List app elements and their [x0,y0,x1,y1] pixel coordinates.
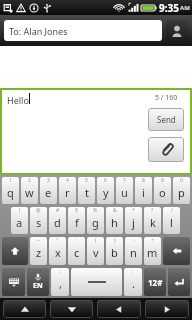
staticText: c [74,245,80,260]
staticText: 9 [161,177,164,184]
button[interactable]: 7 [116,177,133,204]
button[interactable]: Attach [148,137,184,162]
staticText: k [150,215,156,230]
button[interactable]: @ [30,207,47,234]
button[interactable]: 4 [59,177,76,204]
staticText: Hello [7,94,29,106]
staticText: 5 [85,177,88,184]
staticText: EN [33,281,43,291]
button[interactable]: 6 [97,177,114,204]
button[interactable]: 0 [173,177,190,204]
staticText: h [111,215,118,230]
button[interactable]: 2 [21,177,38,204]
button[interactable]: To: Alan Jones [4,20,162,41]
button[interactable]: Space [71,268,122,296]
button[interactable]: Enter [168,268,190,296]
staticText: v [93,245,99,260]
button[interactable]: Backspace [163,237,190,265]
button[interactable]: 8 [135,177,152,204]
button[interactable]: 1 [2,177,19,204]
button[interactable]: & [106,207,123,234]
button[interactable]: + [144,237,161,265]
staticText: 9:35 [159,1,179,15]
staticText: w [25,185,34,200]
staticText: e [45,185,52,200]
button[interactable]: Numbers and symbols [144,268,166,296]
staticText: ' [76,237,78,244]
button[interactable]: : [124,268,142,296]
button[interactable]: | [11,207,28,234]
button[interactable]: Keyboard settings [2,268,25,296]
staticText: # [56,207,60,214]
button[interactable]: ( [87,237,104,265]
staticText: s [36,215,42,230]
staticText: " [56,237,59,244]
staticText: 7 [123,177,126,184]
button[interactable]: / [163,207,180,234]
button[interactable]: Pick contact [166,20,188,42]
button[interactable]: ' [68,237,85,265]
staticText: i [142,185,145,200]
staticText: j [132,215,135,230]
staticText: ; [59,268,61,275]
staticText: 5 / 160 [155,93,178,103]
button[interactable]: - [125,237,142,265]
staticText: / [171,207,173,214]
staticText: + [151,237,154,244]
staticText: , [59,276,62,291]
button[interactable]: * [125,207,142,234]
button[interactable]: Left [97,300,141,318]
staticText: a [16,215,23,230]
button[interactable]: ~ [30,237,47,265]
staticText: r [65,185,70,200]
staticText: f [75,215,79,230]
button[interactable]: $ [68,207,85,234]
staticText: 6 [104,177,107,184]
staticText: 1 [9,177,12,184]
staticText: | [18,207,21,214]
staticText: @ [36,207,41,214]
staticText: n [130,245,137,260]
button[interactable]: % [87,207,104,234]
staticText: . [132,276,135,291]
button[interactable]: Send [148,108,184,131]
staticText: y [103,185,109,200]
staticText: - [133,237,135,244]
staticText: 0 [180,177,183,184]
staticText: ( [95,237,97,244]
staticText: l [170,215,173,230]
staticText: d [54,215,61,230]
staticText: % [93,207,98,214]
staticText: o [159,185,166,200]
staticText: t [85,185,89,200]
staticText: ? [151,207,154,214]
button[interactable]: ; [51,268,69,296]
button[interactable]: Right [145,300,189,318]
staticText: p [178,185,185,200]
button[interactable]: # [49,207,66,234]
button[interactable]: Down [50,300,93,318]
button[interactable]: ) [106,237,123,265]
button[interactable]: Up [3,300,46,318]
staticText: x [55,245,61,260]
staticText: q [7,185,14,200]
staticText: 4 [66,177,69,184]
staticText: b [111,245,118,260]
button[interactable]: 5 [78,177,95,204]
staticText: u [121,185,128,200]
staticText: z [36,245,42,260]
button[interactable]: 9 [154,177,171,204]
button[interactable]: 3 [40,177,57,204]
button[interactable]: ? [144,207,161,234]
staticText: * [132,207,135,214]
button[interactable]: Voice input, English [27,268,49,296]
staticText: : [132,268,134,275]
button[interactable]: " [49,237,66,265]
staticText: m [147,245,158,260]
button[interactable]: Shift [2,237,28,265]
staticText: Send [157,114,176,125]
staticText: g [92,215,99,230]
staticText: 2 [28,177,31,184]
staticText: & [113,207,117,214]
staticText: $ [75,207,78,214]
